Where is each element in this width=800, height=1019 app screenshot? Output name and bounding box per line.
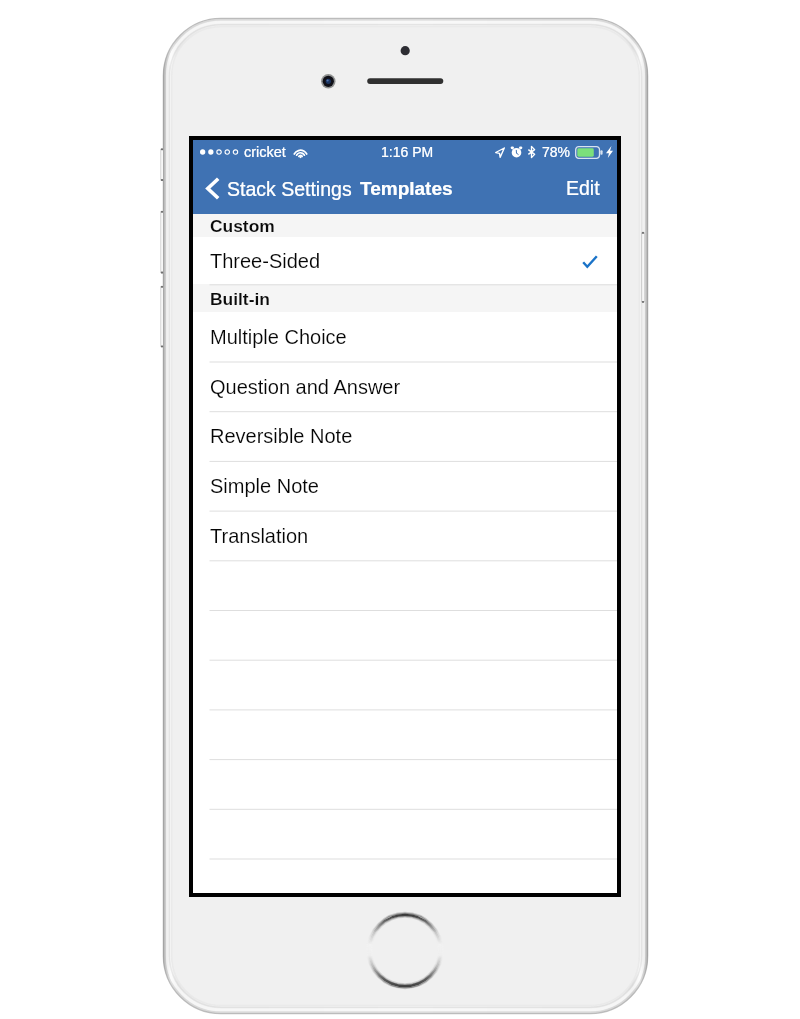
- button[interactable]: Back to Stack Settings: [193, 171, 358, 208]
- staticText: Question and Answer: [210, 376, 401, 398]
- staticText: Stack Settings: [227, 178, 352, 200]
- staticText: Edit: [566, 177, 600, 199]
- staticText: Built-in: [210, 289, 270, 308]
- staticText: Multiple Choice: [210, 326, 347, 348]
- button[interactable]: Translation: [193, 511, 617, 561]
- staticText: Custom: [210, 216, 275, 235]
- staticText: Templates: [360, 178, 453, 199]
- button[interactable]: Question and Answer: [193, 362, 617, 412]
- staticText: 78%: [542, 144, 571, 160]
- staticText: 1:16 PM: [381, 144, 434, 160]
- button[interactable]: Simple Note: [193, 461, 617, 511]
- staticText: cricket: [244, 144, 286, 160]
- button[interactable]: Reversible Note: [193, 411, 617, 461]
- staticText: Three-Sided: [210, 250, 321, 272]
- button[interactable]: Three-Sided: [193, 237, 617, 285]
- button[interactable]: Multiple Choice: [193, 312, 617, 362]
- staticText: Translation: [210, 525, 309, 547]
- staticText: Simple Note: [210, 475, 319, 497]
- button[interactable]: Edit: [552, 169, 617, 207]
- staticText: Reversible Note: [210, 425, 353, 447]
